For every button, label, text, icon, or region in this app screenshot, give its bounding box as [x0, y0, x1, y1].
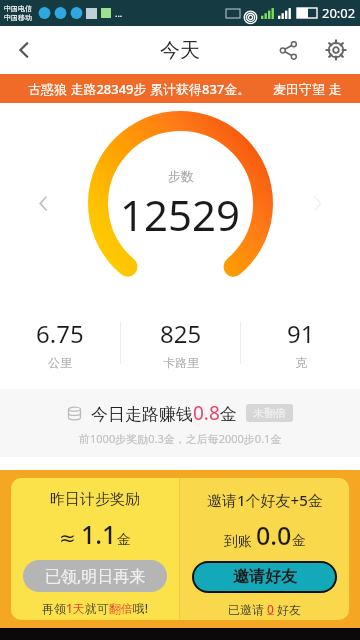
staticText: ... — [115, 7, 123, 19]
staticText: 中国电信 — [4, 4, 32, 13]
staticText: 已领,明日再来 — [45, 565, 146, 587]
staticText: 未翻倍 — [253, 406, 286, 420]
staticText: 公里 — [48, 355, 72, 370]
button[interactable]: 91 — [241, 317, 360, 370]
button[interactable]: Back — [0, 26, 48, 74]
button[interactable]: 已领,明日再来 — [23, 560, 167, 592]
staticText: 今日走路赚钱0.8金 — [91, 400, 237, 426]
staticText: 邀请1个好友+5金 — [207, 490, 323, 510]
staticText: 825 — [160, 317, 202, 350]
staticText: 到账 — [224, 531, 256, 550]
staticText: 麦田守望 走 — [273, 80, 342, 98]
staticText: 前1000步奖励0.3金，之后每2000步0.1金 — [79, 431, 282, 446]
staticText: 6.75 — [36, 317, 84, 350]
staticText: 再领1天就可翻倍哦! — [42, 600, 149, 616]
staticText: 中国移动 — [4, 13, 32, 22]
staticText: 卡路里 — [163, 355, 199, 370]
button[interactable]: Previous day — [28, 188, 58, 218]
button[interactable]: 邀请好友 — [194, 563, 335, 591]
button[interactable]: 古惑狼 走路28349步 累计获得837金。 — [0, 74, 360, 103]
staticText: 0.0 — [256, 518, 292, 552]
button[interactable]: 825 — [121, 317, 240, 370]
button[interactable]: 6.75 — [0, 317, 120, 370]
staticText: 91 — [287, 317, 315, 350]
staticText: 金 — [117, 531, 131, 549]
button[interactable]: Settings — [312, 26, 360, 74]
staticText: ≈ — [59, 524, 81, 551]
staticText: 古惑狼 走路28349步 累计获得837金。 — [28, 80, 251, 98]
staticText: 1.1 — [81, 517, 117, 551]
staticText: 克 — [295, 355, 307, 370]
staticText: 已邀请 0 好友 — [228, 601, 302, 617]
staticText: 12529 — [120, 186, 241, 243]
staticText: 步数 — [168, 168, 194, 184]
staticText: 今天 — [160, 38, 200, 63]
staticText: 20:02 — [322, 4, 356, 22]
staticText: 邀请好友 — [233, 567, 297, 587]
button[interactable]: Share — [264, 26, 312, 74]
staticText: 昨日计步奖励 — [50, 490, 140, 509]
staticText: 金 — [292, 532, 306, 550]
button[interactable]: 今日走路赚钱0.8金 — [0, 389, 360, 457]
